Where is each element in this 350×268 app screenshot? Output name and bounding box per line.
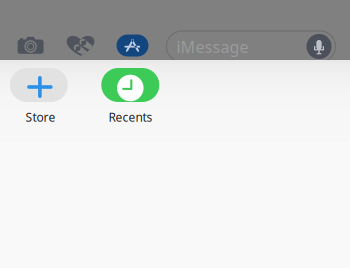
staticText: Recents [108,109,152,125]
button[interactable]: Recents [90,67,170,125]
button[interactable]: Store [0,67,79,125]
button[interactable]: App Store [110,23,154,67]
button[interactable]: iMessage [166,31,335,62]
button[interactable]: Dictate [304,31,334,62]
staticText: iMessage [176,36,248,57]
button[interactable]: Digital Touch [58,23,102,67]
button[interactable]: Camera [9,23,53,67]
staticText: Store [25,109,55,125]
